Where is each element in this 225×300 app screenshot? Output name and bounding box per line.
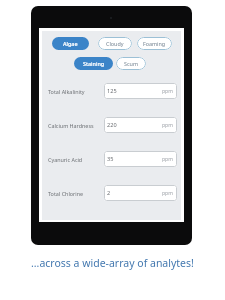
button[interactable]: Scum <box>116 57 146 70</box>
button[interactable]: 35 <box>104 151 177 167</box>
button[interactable]: Total Alkalinity <box>42 74 181 108</box>
staticText: Cloudy <box>106 40 124 47</box>
staticText: ppm <box>162 122 173 129</box>
staticText: 2 <box>107 189 111 197</box>
staticText: Foaming <box>143 40 166 47</box>
staticText: ppm <box>162 88 173 95</box>
button[interactable]: 125 <box>104 83 177 99</box>
staticText: …across a wide-array of analytes! <box>31 256 194 270</box>
staticText: Algae <box>63 40 78 47</box>
button[interactable]: Staining <box>74 57 113 70</box>
button[interactable]: Cyanuric Acid <box>42 142 181 176</box>
button[interactable]: 2 <box>104 185 177 201</box>
staticText: Total Alkalinity <box>48 88 104 95</box>
button[interactable]: Total Chlorine <box>42 176 181 210</box>
staticText: Total Chlorine <box>48 190 104 197</box>
staticText: Cyanuric Acid <box>48 156 104 163</box>
button[interactable]: Cloudy <box>98 37 132 50</box>
button[interactable]: Algae <box>52 37 89 50</box>
staticText: 220 <box>107 121 117 129</box>
staticText: ppm <box>162 156 173 163</box>
staticText: Staining <box>83 60 105 67</box>
staticText: ppm <box>162 190 173 197</box>
staticText: Calcium Hardness <box>48 122 104 129</box>
button[interactable]: Calcium Hardness <box>42 108 181 142</box>
button[interactable]: Foaming <box>137 37 172 50</box>
staticText: 35 <box>107 155 114 163</box>
button[interactable]: 220 <box>104 117 177 133</box>
staticText: 125 <box>107 87 117 95</box>
staticText: Scum <box>124 60 138 67</box>
